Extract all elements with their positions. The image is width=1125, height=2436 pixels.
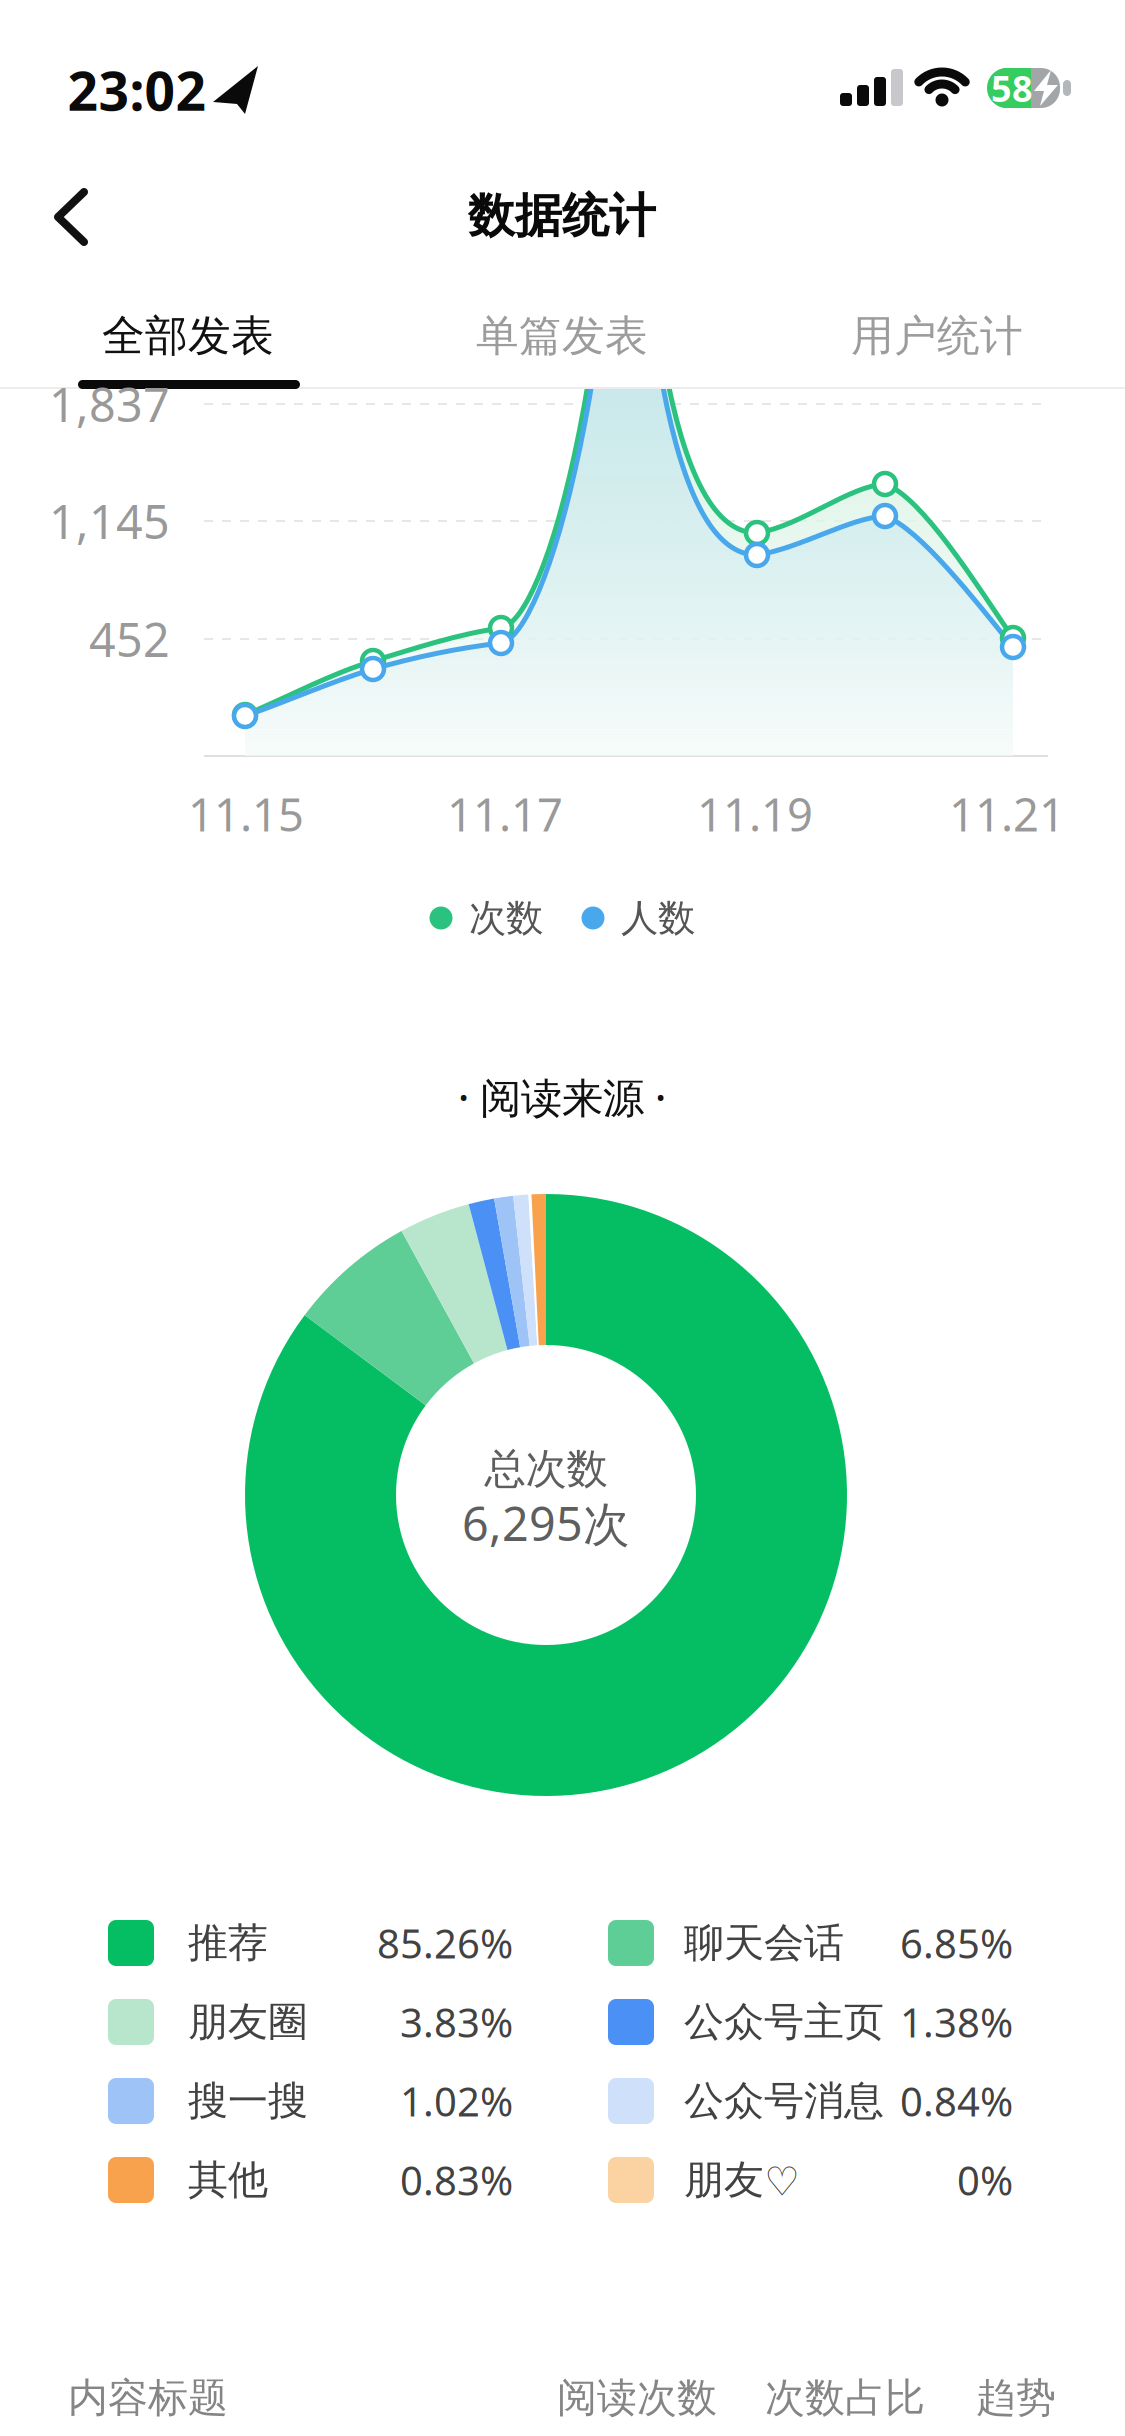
button[interactable]: 单篇发表 [476, 290, 648, 382]
staticText: 452 [89, 608, 170, 670]
staticText: 1,837 [49, 373, 170, 435]
staticText: 内容标题 [68, 2373, 228, 2422]
staticText: 85.26% [377, 1916, 513, 1969]
staticText: 1.38% [900, 1995, 1013, 2048]
staticText: 用户统计 [851, 310, 1023, 362]
button[interactable]: 返回 [32, 152, 142, 282]
button[interactable]: 全部发表 [102, 290, 274, 382]
staticText: 公众号消息 [684, 2076, 884, 2125]
button[interactable]: 次数占比 [765, 2361, 925, 2434]
staticText: 1.02% [400, 2074, 513, 2127]
staticText: 总次数 [484, 1444, 607, 1494]
staticText: 6.85% [900, 1916, 1013, 1969]
staticText: 0% [957, 2153, 1013, 2206]
staticText: 6,295次 [462, 1492, 630, 1554]
staticText: 朋友♡ [684, 2155, 800, 2204]
staticText: 推荐 [188, 1918, 268, 1967]
button[interactable]: 用户统计 [851, 290, 1023, 382]
staticText: 公众号主页 [684, 1997, 884, 2046]
staticText: 1,145 [49, 490, 170, 552]
staticText: 23:02 [67, 55, 206, 125]
staticText: 人数 [621, 895, 695, 941]
staticText: 11.15 [188, 784, 304, 844]
staticText: 趋势 [976, 2373, 1056, 2422]
staticText: 0.83% [400, 2153, 513, 2206]
staticText: 11.21 [949, 784, 1065, 844]
staticText: · 阅读来源 · [458, 1070, 666, 1124]
staticText: 聊天会话 [684, 1918, 844, 1967]
staticText: 数据统计 [468, 187, 656, 245]
staticText: 次数 [469, 895, 543, 941]
staticText: 0.84% [900, 2074, 1013, 2127]
staticText: 搜一搜 [188, 2076, 308, 2125]
staticText: 次数占比 [765, 2373, 925, 2422]
staticText: 其他 [188, 2155, 268, 2204]
button[interactable]: 趋势 [976, 2361, 1056, 2434]
staticText: 11.17 [447, 784, 563, 844]
staticText: 58 [991, 64, 1033, 112]
staticText: 阅读次数 [557, 2373, 717, 2422]
staticText: 单篇发表 [476, 310, 648, 362]
button[interactable]: 阅读次数 [557, 2361, 717, 2434]
staticText: 11.19 [697, 784, 813, 844]
staticText: 朋友圈 [188, 1997, 308, 2046]
staticText: 3.83% [400, 1995, 513, 2048]
staticText: 全部发表 [102, 310, 274, 362]
